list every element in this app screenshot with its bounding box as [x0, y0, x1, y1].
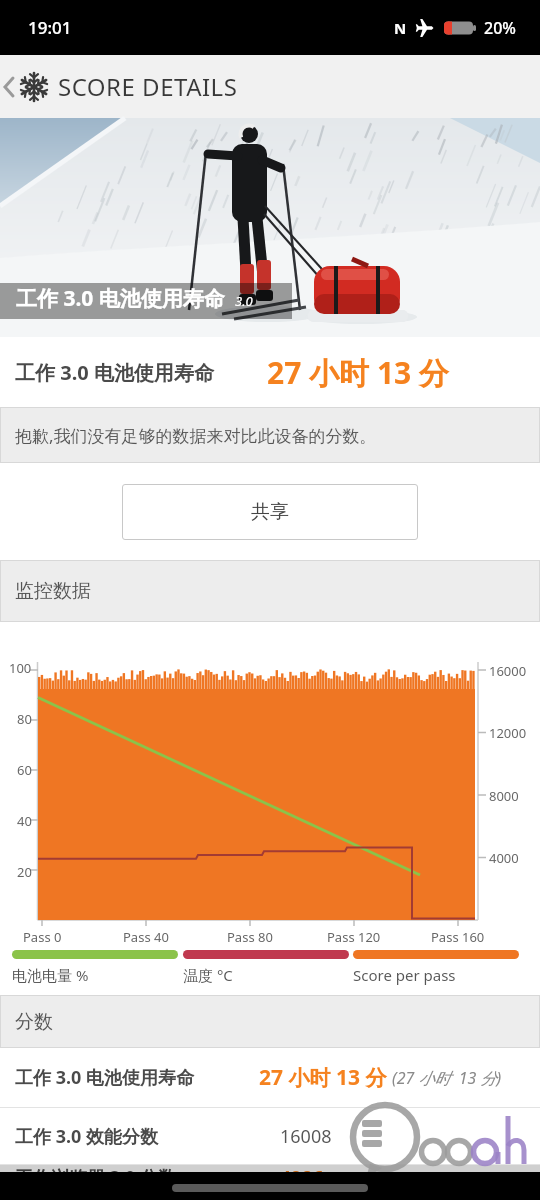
staticText: 工作浏览器 3.0 分数 [15, 1165, 177, 1172]
staticText: SCORE DETAILS [58, 70, 238, 103]
staticText: 40 [17, 812, 32, 830]
staticText: 4926 [280, 1165, 324, 1172]
staticText: Pass 40 [123, 928, 169, 946]
staticText: 16008 [280, 1124, 332, 1149]
staticText: 27 小时 13 分 [267, 352, 450, 393]
staticText: 电池电量 % [12, 965, 89, 985]
staticText: 抱歉,我们没有足够的数据来对比此设备的分数。 [15, 424, 377, 447]
staticText: 16000 [489, 662, 527, 680]
staticText: 19:01 [28, 16, 72, 39]
staticText: 工作 3.0 电池使用寿命 [15, 359, 214, 386]
button[interactable]: 工作 3.0 电池使用寿命 [0, 118, 540, 337]
button[interactable]: 工作 3.0 电池使用寿命 [0, 1048, 540, 1107]
staticText: 12000 [489, 724, 527, 742]
staticText: Pass 160 [431, 928, 485, 946]
staticText: 工作 3.0 电池使用寿命 [16, 284, 225, 313]
staticText: 3.0 [235, 292, 253, 310]
staticText: 共享 [251, 500, 289, 524]
staticText: 监控数据 [15, 579, 91, 603]
button[interactable]: 共享 [122, 484, 418, 540]
staticText: 分数 [15, 1010, 53, 1034]
staticText: Score per pass [353, 965, 456, 985]
staticText: 100 [9, 659, 32, 677]
staticText: 60 [17, 761, 32, 779]
staticText: Pass 0 [23, 928, 62, 946]
staticText: 20 [17, 863, 32, 881]
staticText: 20% [484, 17, 516, 39]
button[interactable]: 工作 3.0 效能分数 [0, 1108, 540, 1164]
staticText: 8000 [489, 787, 519, 805]
staticText: 温度 °C [183, 965, 233, 985]
staticText: N [394, 18, 407, 38]
staticText: 4000 [489, 849, 519, 867]
staticText: Pass 120 [327, 928, 381, 946]
staticText: 工作 3.0 效能分数 [15, 1124, 159, 1149]
staticText: Pass 80 [227, 928, 273, 946]
staticText: 工作 3.0 电池使用寿命 [15, 1065, 195, 1090]
staticText: (27 小时 13 分) [392, 1067, 502, 1089]
staticText: 27 小时 13 分 [259, 1063, 387, 1092]
button[interactable] [0, 55, 18, 118]
staticText: 80 [17, 710, 32, 728]
